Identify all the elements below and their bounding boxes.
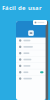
- button[interactable]: Setting: [16, 63, 46, 69]
- button[interactable]: Setting: [16, 37, 46, 43]
- staticText: Fácil de usar: [2, 3, 42, 12]
- button[interactable]: Setting: [16, 44, 46, 50]
- button[interactable]: Setting: [16, 69, 46, 75]
- button[interactable]: Setting: [16, 76, 46, 82]
- button[interactable]: Setting: [16, 50, 46, 56]
- button[interactable]: Setting: [16, 56, 46, 62]
